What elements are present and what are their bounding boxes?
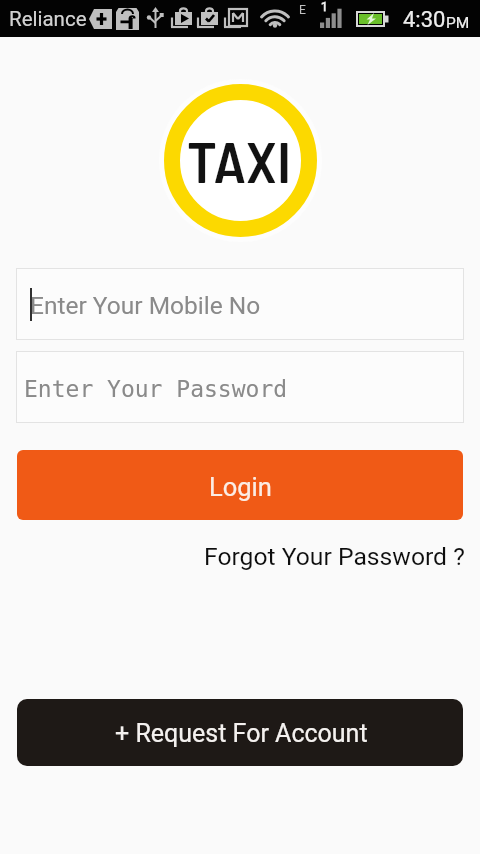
staticText: 4:30: [403, 7, 446, 33]
staticText: E: [299, 3, 306, 17]
staticText: TAXI: [187, 125, 292, 195]
staticText: Reliance: [9, 7, 87, 31]
staticText: Enter Your Mobile No: [30, 291, 261, 320]
button[interactable]: Enter Your Mobile No: [16, 268, 464, 340]
button[interactable]: Login: [17, 450, 463, 520]
staticText: 1: [321, 0, 328, 14]
staticText: Enter Your Password: [24, 376, 288, 403]
button[interactable]: + Request For Account: [17, 699, 463, 766]
staticText: Login: [209, 472, 272, 502]
staticText: Forgot Your Password ?: [204, 542, 465, 571]
button[interactable]: Enter Your Password: [16, 351, 464, 423]
staticText: PM: [446, 14, 470, 32]
staticText: + Request For Account: [115, 719, 368, 748]
button[interactable]: Forgot Your Password ?: [200, 539, 465, 573]
